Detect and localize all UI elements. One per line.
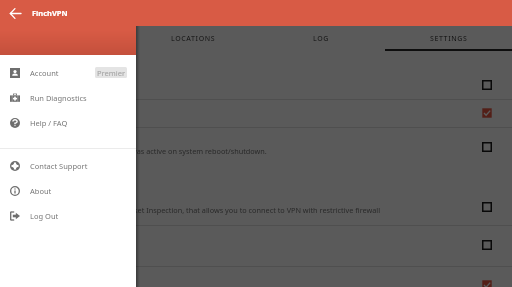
staticText: FinchVPN <box>32 8 68 18</box>
button[interactable]: LOCATIONS <box>129 26 257 51</box>
staticText: Account <box>30 68 59 78</box>
staticText: LOCATIONS <box>171 34 216 44</box>
button[interactable]: Contact Support <box>0 153 136 178</box>
staticText: About <box>30 186 52 196</box>
button[interactable]: Toggle setting <box>477 275 497 287</box>
staticText: SETTINGS <box>430 34 468 44</box>
button[interactable]: LOG <box>257 26 385 51</box>
button[interactable]: Account <box>0 60 136 85</box>
button[interactable]: About <box>0 178 136 203</box>
staticText: Premier <box>97 68 125 78</box>
staticText: Start VPN automatically on boot if it wa… <box>7 146 267 156</box>
button[interactable]: Toggle setting <box>477 235 497 255</box>
staticText: Log Out <box>30 211 59 221</box>
button[interactable]: Toggle setting <box>477 103 497 123</box>
button[interactable]: Run Diagnostics <box>0 85 136 110</box>
staticText: Enable this option to use the TCP Packet… <box>7 205 381 215</box>
staticText: Run Diagnostics <box>30 93 87 103</box>
button[interactable]: Toggle setting <box>477 137 497 157</box>
staticText: Contact Support <box>30 161 88 171</box>
staticText: Help / FAQ <box>30 118 68 128</box>
button[interactable]: SETTINGS <box>385 26 512 51</box>
staticText: LOG <box>313 34 329 44</box>
button[interactable]: Toggle setting <box>477 75 497 95</box>
button[interactable]: Toggle setting <box>477 197 497 217</box>
button[interactable]: Help / FAQ <box>0 110 136 135</box>
button[interactable]: Log Out <box>0 203 136 228</box>
button[interactable]: Back <box>4 2 27 25</box>
